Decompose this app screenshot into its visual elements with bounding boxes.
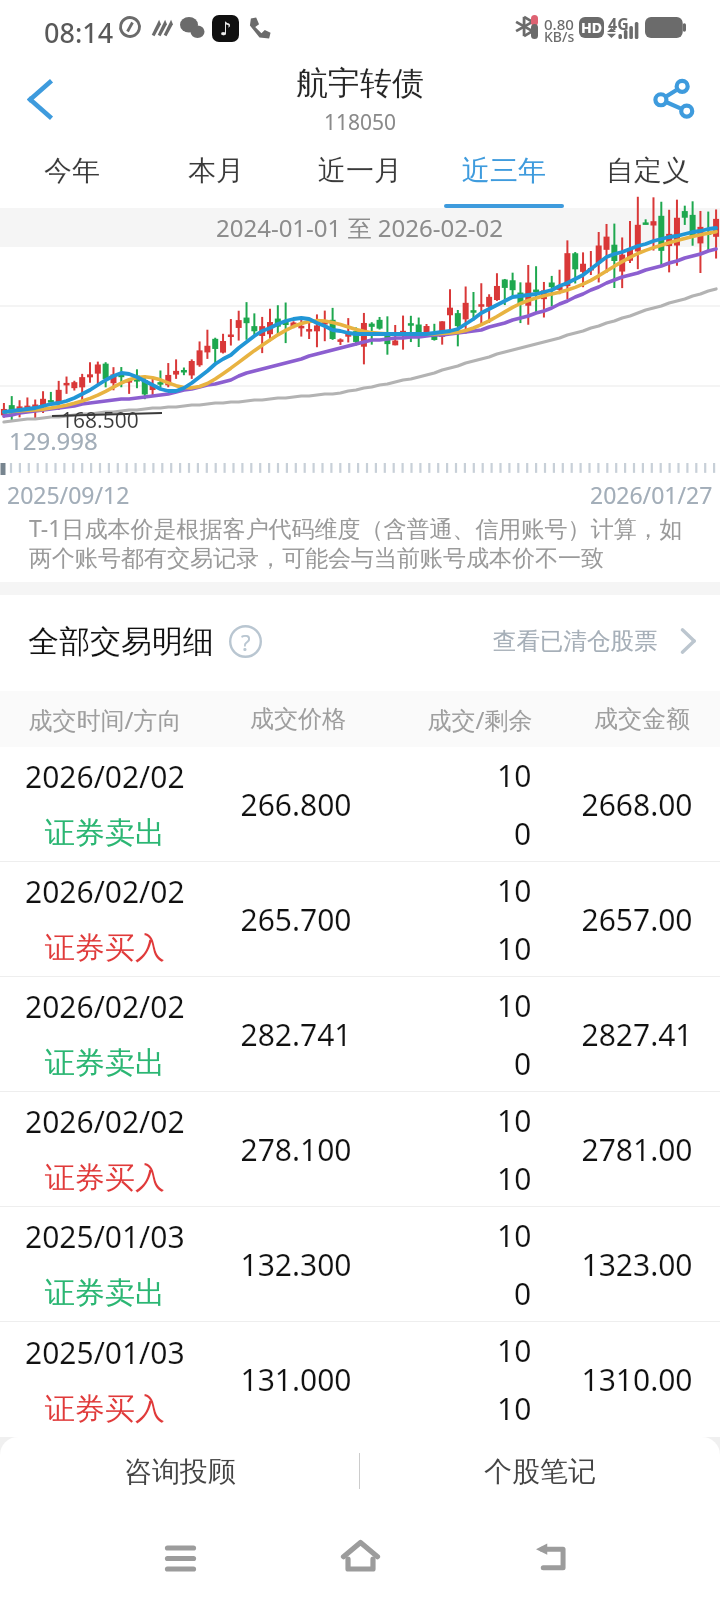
staticText: 证券卖出 (45, 814, 165, 852)
staticText: 查看已清仓股票 (493, 626, 658, 656)
staticText: 10 (497, 1215, 532, 1256)
button[interactable]: 2026/02/02 (0, 1092, 720, 1206)
staticText: ? (241, 627, 251, 657)
staticText: 10 (497, 1158, 532, 1199)
staticText: 10 (497, 755, 532, 796)
staticText: 0 (514, 1273, 532, 1314)
staticText: 证券卖出 (45, 1044, 165, 1082)
button[interactable]: 2025/01/03 (0, 1207, 720, 1321)
staticText: 10 (497, 870, 532, 911)
staticText: 2026/02/02 (25, 756, 185, 797)
button[interactable]: Back (6, 65, 74, 133)
staticText: 2827.41 (580, 1014, 694, 1055)
staticText: 129.998 (9, 424, 98, 457)
staticText: 118050 (324, 108, 397, 137)
button[interactable]: 2026/02/02 (0, 747, 720, 861)
staticText: 咨询投顾 (124, 1454, 236, 1489)
staticText: KB/s (544, 27, 575, 46)
staticText: 全部交易明细 (28, 622, 214, 661)
staticText: 2025/09/12 (7, 479, 130, 510)
staticText: 近三年 (462, 153, 546, 188)
staticText: 2024-01-01 至 2026-02-02 (216, 211, 504, 244)
staticText: 2025/01/03 (25, 1216, 185, 1257)
staticText: 0 (514, 1043, 532, 1084)
button[interactable]: 2026/02/02 (0, 862, 720, 976)
staticText: 证券卖出 (45, 1274, 165, 1312)
button[interactable]: 今年 (0, 140, 144, 208)
staticText: 1323.00 (580, 1244, 694, 1285)
staticText: 10 (497, 1330, 532, 1371)
staticText: 证券买入 (45, 1159, 165, 1197)
staticText: 成交时间/方向 (15, 703, 195, 736)
button[interactable]: 个股笔记 (360, 1437, 720, 1505)
staticText: 成交金额 (582, 704, 702, 734)
button[interactable]: Recent apps (120, 1510, 240, 1600)
staticText: 证券买入 (45, 929, 165, 967)
staticText: 266.800 (238, 784, 354, 825)
button[interactable]: 咨询投顾 (0, 1437, 359, 1505)
staticText: ♪ (220, 18, 232, 39)
staticText: 10 (497, 985, 532, 1026)
button[interactable]: Home (300, 1510, 420, 1600)
staticText: 2026/02/02 (25, 986, 185, 1027)
button[interactable]: Share (640, 65, 708, 133)
button[interactable]: 近一月 (288, 140, 432, 208)
staticText: 131.000 (238, 1359, 354, 1400)
staticText: T-1日成本价是根据客户代码维度（含普通、信用账号）计算，如 (29, 512, 683, 543)
staticText: 278.100 (238, 1129, 354, 1170)
staticText: 2781.00 (580, 1129, 694, 1170)
staticText: 近一月 (318, 153, 402, 188)
staticText: HD (581, 18, 602, 37)
staticText: 个股笔记 (484, 1454, 596, 1489)
staticText: 证券买入 (45, 1390, 165, 1428)
staticText: 成交价格 (238, 704, 358, 734)
button[interactable]: Back (480, 1510, 600, 1600)
button[interactable]: Help (229, 625, 262, 658)
staticText: 1310.00 (580, 1359, 694, 1400)
staticText: 两个账号都有交易记录，可能会与当前账号成本价不一致 (29, 544, 604, 573)
button[interactable]: 本月 (144, 140, 288, 208)
staticText: 10 (497, 928, 532, 969)
staticText: 2026/01/27 (590, 479, 713, 510)
staticText: 航宇转债 (296, 63, 424, 103)
staticText: 265.700 (238, 899, 354, 940)
staticText: 0 (514, 813, 532, 854)
button[interactable]: 2026/02/02 (0, 977, 720, 1091)
button[interactable]: 自定义 (576, 140, 720, 208)
staticText: 成交/剩余 (420, 703, 540, 736)
staticText: 2026/02/02 (25, 1101, 185, 1142)
staticText: 08:14 (44, 14, 114, 51)
staticText: 自定义 (606, 153, 690, 188)
staticText: 10 (497, 1388, 532, 1429)
staticText: 2025/01/03 (25, 1332, 185, 1373)
staticText: 282.741 (238, 1014, 354, 1055)
staticText: 4G (608, 13, 629, 35)
button[interactable]: 查看已清仓股票 (493, 626, 702, 656)
staticText: 0.80 (544, 14, 574, 34)
staticText: 2668.00 (580, 784, 694, 825)
staticText: 今年 (44, 153, 100, 188)
button[interactable]: 近三年 (432, 140, 576, 208)
staticText: 10 (497, 1100, 532, 1141)
staticText: 168.500 (61, 406, 139, 435)
staticText: 132.300 (238, 1244, 354, 1285)
staticText: 本月 (188, 153, 244, 188)
staticText: 2026/02/02 (25, 871, 185, 912)
button[interactable]: 2025/01/03 (0, 1322, 720, 1437)
staticText: 2657.00 (580, 899, 694, 940)
